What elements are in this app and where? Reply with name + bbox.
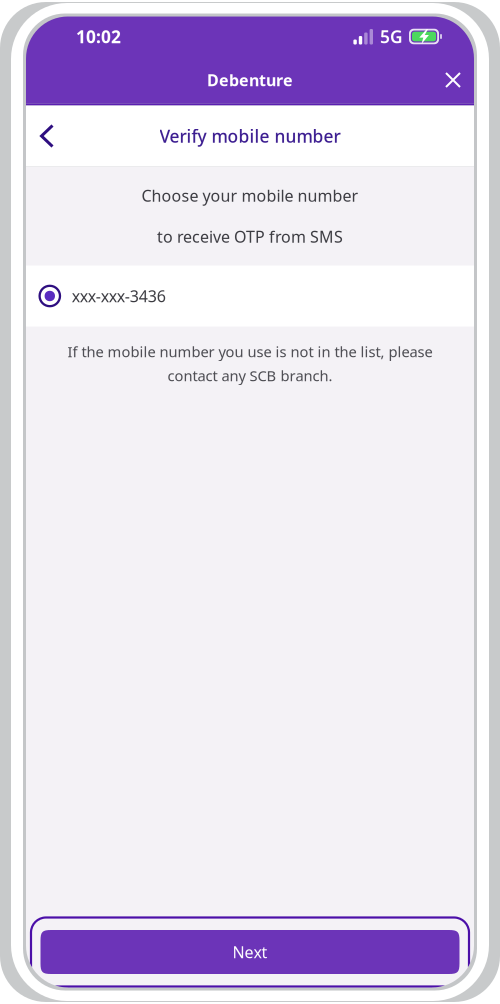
staticText: contact any SCB branch. <box>167 366 332 385</box>
staticText: to receive OTP from SMS <box>157 226 343 247</box>
button[interactable]: xxx-xxx-3436 <box>26 265 474 326</box>
staticText: Next <box>232 941 267 963</box>
staticText: Verify mobile number <box>159 124 340 147</box>
staticText: Choose your mobile number <box>141 185 358 206</box>
staticText: Debenture <box>207 69 293 91</box>
button[interactable]: Close <box>432 59 474 101</box>
staticText: xxx-xxx-3436 <box>72 285 166 307</box>
button[interactable]: Back <box>26 115 68 157</box>
staticText: 10:02 <box>76 25 121 48</box>
button[interactable]: Next <box>31 917 469 986</box>
staticText: If the mobile number you use is not in t… <box>67 342 432 361</box>
staticText: 5G <box>380 25 403 48</box>
